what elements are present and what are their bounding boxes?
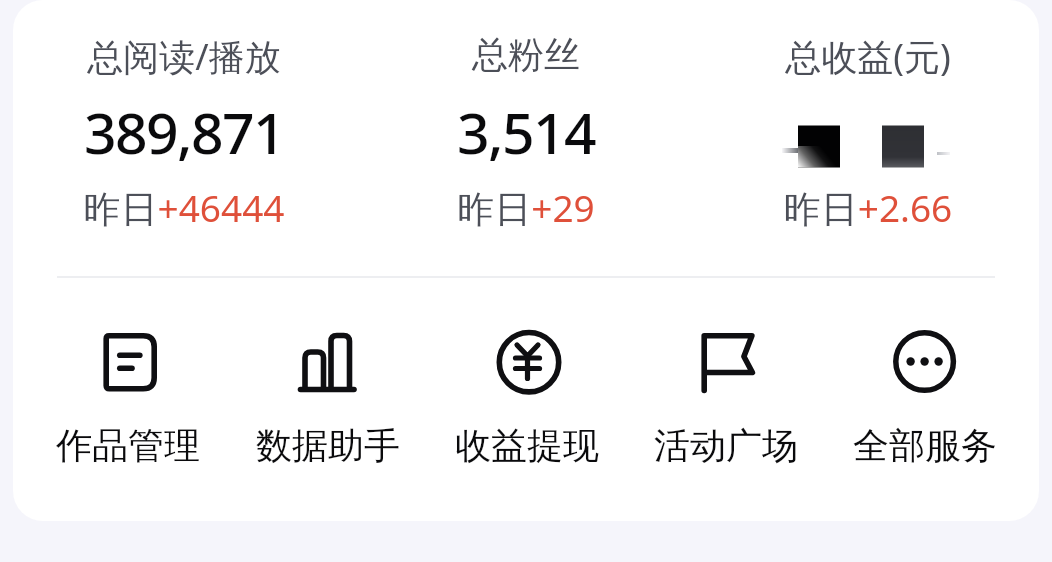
staticText: 389,871 (13, 93, 355, 171)
button[interactable]: 全部服务 (825, 328, 1024, 468)
other: 收益提现 (493, 328, 561, 396)
staticText: 昨日+29 (355, 182, 697, 233)
other: 活动广场 (692, 328, 760, 396)
button[interactable]: 数据助手 (228, 328, 427, 468)
staticText: 总收益(元) (697, 32, 1039, 81)
staticText: 总阅读/播放 (13, 32, 355, 81)
staticText: 昨日+2.66 (697, 182, 1039, 233)
other: 全部服务 (891, 328, 959, 396)
staticText: 数据助手 (256, 423, 400, 468)
staticText: 昨日+46444 (13, 182, 355, 233)
other: 数据助手 (294, 328, 362, 396)
button[interactable]: 活动广场 (626, 328, 825, 468)
button[interactable]: 收益提现 (427, 328, 626, 468)
button[interactable]: 作品管理 (28, 328, 228, 468)
other: 作品管理 (94, 328, 162, 396)
staticText: 活动广场 (654, 423, 798, 468)
staticText: 作品管理 (56, 423, 200, 468)
staticText: 收益提现 (455, 423, 599, 468)
button[interactable]: 总阅读/播放 (13, 0, 355, 262)
button[interactable]: 总粉丝 (355, 0, 697, 262)
staticText: 总粉丝 (355, 32, 697, 77)
button[interactable]: 总收益(元) (697, 0, 1039, 262)
staticText: 全部服务 (853, 423, 997, 468)
staticText: 3,514 (355, 93, 697, 171)
